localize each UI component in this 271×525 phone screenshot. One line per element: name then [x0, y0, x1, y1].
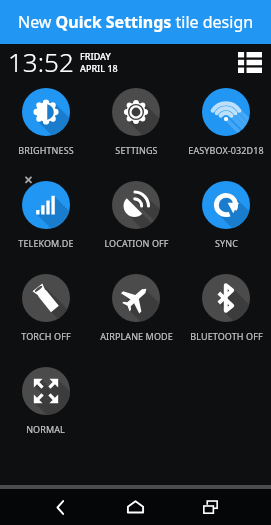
staticText: TELEKOM.DE — [18, 237, 74, 249]
staticText: AIRPLANE MODE — [100, 330, 173, 342]
staticText: SETTINGS — [115, 144, 158, 156]
staticText: BRIGHTNESS — [18, 144, 74, 156]
staticText: TORCH OFF — [21, 330, 71, 342]
staticText: NORMAL — [26, 423, 65, 435]
button[interactable]: AIRPLANE MODE — [91, 274, 181, 342]
staticText: EASYBOX-032D18 — [188, 144, 264, 156]
staticText: New Quick Settings tile design — [18, 11, 254, 33]
staticText: APRIL 18 — [80, 62, 118, 74]
staticText: BLUETOOTH OFF — [190, 330, 263, 342]
button[interactable]: Back — [23, 489, 98, 525]
button[interactable]: NORMAL — [0, 367, 91, 435]
staticText: FRIDAY — [80, 50, 111, 62]
button[interactable]: BRIGHTNESS — [0, 88, 91, 156]
button[interactable]: LOCATION OFF — [91, 181, 181, 249]
button[interactable]: EASYBOX-032D18 — [181, 88, 271, 156]
button[interactable]: Home — [98, 489, 173, 525]
staticText: SYNC — [215, 237, 238, 249]
button[interactable]: TELEKOM.DE — [0, 181, 91, 249]
button[interactable]: Switch to list view — [236, 48, 264, 76]
button[interactable]: SYNC — [181, 181, 271, 249]
button[interactable]: Recent apps — [173, 489, 248, 525]
button[interactable]: TORCH OFF — [0, 274, 91, 342]
staticText: LOCATION OFF — [104, 237, 169, 249]
button[interactable]: SETTINGS — [91, 88, 181, 156]
button[interactable]: BLUETOOTH OFF — [181, 274, 271, 342]
staticText: 13:52 — [8, 44, 74, 79]
button[interactable]: New Quick Settings tile design — [0, 0, 271, 44]
